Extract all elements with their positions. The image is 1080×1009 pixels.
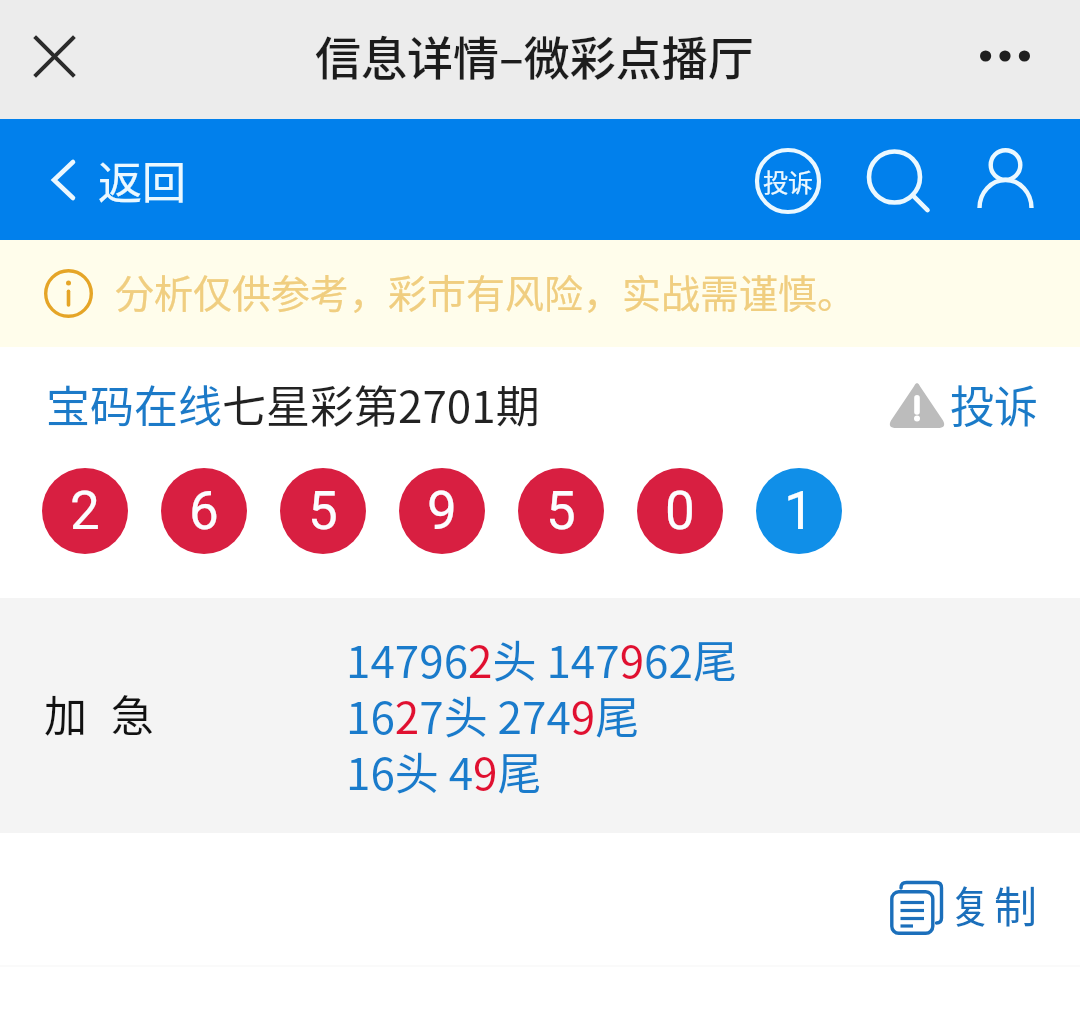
staticText: 6 <box>189 480 219 542</box>
button[interactable]: 6 <box>161 468 247 554</box>
staticText: 5 <box>308 480 338 542</box>
button[interactable]: 5 <box>280 468 366 554</box>
staticText: 返回 <box>98 148 186 212</box>
button[interactable]: Report a complaint <box>744 137 832 225</box>
staticText: 宝码在线七星彩第2701期 <box>46 372 540 436</box>
staticText: 复制 <box>949 873 1039 935</box>
staticText: 5 <box>546 480 576 542</box>
staticText: 2 <box>70 480 100 542</box>
staticText: 投诉 <box>763 163 814 199</box>
staticText: 0 <box>665 480 695 542</box>
staticText: 9 <box>427 480 457 542</box>
staticText: 信息详情–微彩点播厅 <box>315 22 754 89</box>
button[interactable]: Close <box>16 18 92 94</box>
button[interactable]: 5 <box>518 468 604 554</box>
button[interactable]: 复制 <box>891 882 1039 944</box>
button[interactable]: 1 <box>756 468 842 554</box>
staticText: 加 急 <box>44 682 156 744</box>
button[interactable]: More options <box>960 19 1050 93</box>
staticText: 投诉 <box>950 372 1038 436</box>
staticText: 147962头 147962尾 1627头 2749尾 16头 49尾 <box>346 627 737 803</box>
button[interactable]: 返回 <box>51 132 186 228</box>
button[interactable]: 2 <box>42 468 128 554</box>
staticText: 1 <box>784 480 814 542</box>
button[interactable]: Search <box>852 136 940 224</box>
button[interactable]: Profile <box>961 136 1049 224</box>
button[interactable]: 9 <box>399 468 485 554</box>
staticText: 分析仅供参考，彩市有风险，实战需谨慎。 <box>115 263 857 319</box>
button[interactable]: 投诉 <box>888 372 1038 436</box>
button[interactable]: 0 <box>637 468 723 554</box>
